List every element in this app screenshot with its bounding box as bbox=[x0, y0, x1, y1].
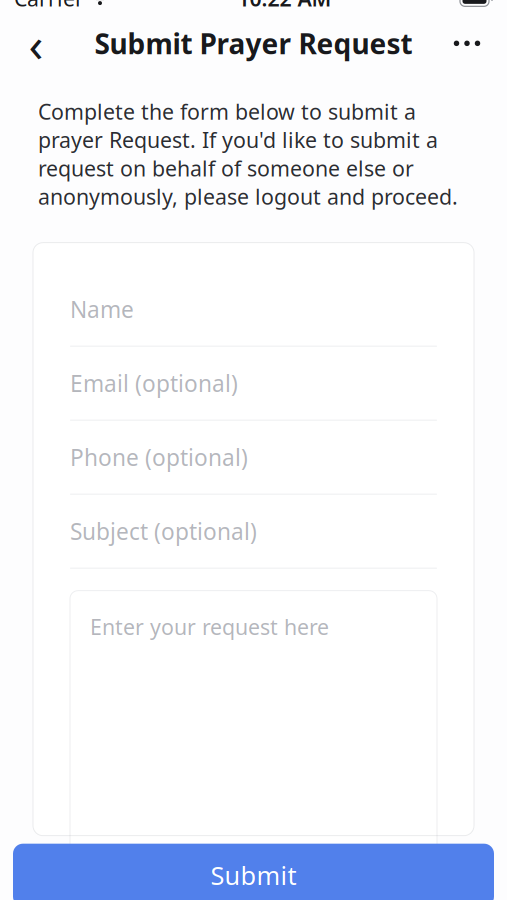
button[interactable]: Phone (optional) bbox=[70, 421, 437, 495]
staticText: ‹ bbox=[28, 11, 43, 75]
staticText: Email (optional) bbox=[70, 368, 238, 398]
button[interactable]: Subject (optional) bbox=[70, 495, 437, 569]
button[interactable]: Name bbox=[70, 273, 437, 347]
button[interactable]: Submit bbox=[13, 844, 494, 900]
button[interactable]: Back bbox=[13, 20, 59, 66]
staticText: 10:22 AM bbox=[237, 0, 331, 12]
staticText: Submit bbox=[210, 858, 296, 892]
button[interactable]: More options bbox=[440, 20, 494, 66]
staticText: Complete the form below to submit a pray… bbox=[38, 97, 458, 211]
staticText: Carrier bbox=[14, 0, 84, 12]
staticText: Enter your request here bbox=[90, 613, 329, 641]
staticText: Name bbox=[70, 294, 134, 324]
staticText: Subject (optional) bbox=[70, 516, 257, 546]
staticText: Submit Prayer Request bbox=[94, 25, 412, 62]
button[interactable]: Enter your request here bbox=[70, 591, 437, 859]
staticText: Phone (optional) bbox=[70, 442, 248, 472]
button[interactable]: Email (optional) bbox=[70, 347, 437, 421]
